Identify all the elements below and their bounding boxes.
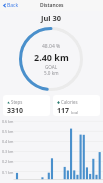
- staticText: 5.0 km: [44, 70, 59, 76]
- staticText: 2.40 km: [34, 51, 69, 63]
- staticText: 0.3 km: [2, 149, 14, 154]
- staticText: 117: [57, 106, 70, 116]
- button[interactable]: Steps: [3, 95, 50, 116]
- staticText: 48.04 %: [42, 43, 61, 50]
- staticText: kcal: [71, 110, 79, 115]
- staticText: 0.1 km: [2, 170, 14, 175]
- button[interactable]: Calories: [53, 95, 100, 116]
- staticText: Back: [7, 2, 19, 9]
- staticText: Calories: [61, 99, 78, 105]
- staticText: Distances: [40, 2, 64, 9]
- staticText: 3310: [7, 106, 24, 116]
- staticText: 0.2 km: [2, 159, 14, 164]
- button[interactable]: Back: [2, 2, 19, 9]
- staticText: Steps: [11, 99, 23, 105]
- staticText: 0.5 km: [2, 129, 14, 134]
- staticText: 0.4 km: [2, 139, 14, 144]
- staticText: 0.6 km: [2, 119, 14, 124]
- staticText: GOAL: [45, 64, 58, 70]
- staticText: Jul 30: [41, 13, 62, 23]
